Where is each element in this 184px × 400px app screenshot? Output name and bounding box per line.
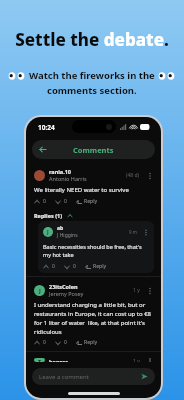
staticText: I understand charging a little bit, but …	[34, 301, 154, 335]
button[interactable]: More options	[145, 171, 154, 180]
button[interactable]: Back	[35, 142, 50, 157]
staticText: 0	[73, 263, 76, 270]
staticText: 0	[64, 339, 67, 346]
button[interactable]: Upvote	[34, 339, 46, 346]
staticText: 0	[64, 198, 67, 205]
staticText: 0	[43, 198, 46, 205]
staticText: Watch the fireworks in the	[29, 69, 155, 82]
button[interactable]: Reply	[76, 198, 98, 205]
staticText: We literally NEED water to survive	[34, 186, 154, 194]
staticText: 0	[52, 263, 55, 270]
button[interactable]: Send	[140, 372, 149, 381]
staticText: 10:24	[38, 123, 55, 132]
staticText: J Higgins	[57, 232, 78, 239]
button[interactable]: Downvote	[64, 263, 76, 270]
button[interactable]: More options	[142, 228, 150, 236]
staticText: Reply	[93, 263, 107, 270]
staticText: ab	[57, 225, 64, 232]
button[interactable]: Downvote	[55, 198, 67, 205]
button[interactable]: Reply	[85, 263, 107, 270]
button[interactable]: Upvote	[43, 263, 55, 270]
button[interactable]: J	[26, 277, 161, 351]
staticText: Settle the debate.	[15, 28, 169, 51]
staticText: Antonio Harris	[49, 175, 87, 182]
staticText: Leave a comment	[39, 373, 89, 381]
button[interactable]: Leave a comment	[32, 368, 155, 385]
staticText: 23itsColen	[49, 283, 78, 290]
button[interactable]: Reply	[76, 339, 98, 346]
button[interactable]: Replies (1)	[26, 210, 161, 221]
staticText: rania.10	[49, 168, 71, 175]
button[interactable]: Upvote	[34, 198, 46, 205]
button[interactable]: More options	[145, 286, 154, 295]
button[interactable]: T	[26, 352, 161, 365]
staticText: 1 y	[133, 358, 140, 362]
staticText: J	[39, 287, 41, 294]
staticText: comments section.	[47, 84, 137, 97]
button[interactable]: More options	[145, 358, 154, 362]
button[interactable]: rania.10	[26, 162, 161, 210]
staticText: Basic necessities should be free, that's…	[43, 243, 150, 259]
button[interactable]: Downvote	[55, 339, 67, 346]
button[interactable]: J	[38, 221, 154, 273]
staticText: 0	[43, 339, 46, 346]
staticText: 9 m	[129, 229, 137, 235]
staticText: Jeremy Posey	[49, 290, 84, 297]
staticText: Reply	[84, 198, 98, 205]
staticText: Reply	[84, 339, 98, 346]
staticText: T	[38, 358, 42, 362]
staticText: (48 d)	[126, 172, 140, 179]
staticText: Replies (1)	[34, 212, 63, 219]
staticText: J	[47, 229, 49, 236]
staticText: 1 y	[133, 287, 140, 294]
staticText: beggss	[49, 358, 69, 362]
staticText: Comments	[73, 145, 114, 155]
